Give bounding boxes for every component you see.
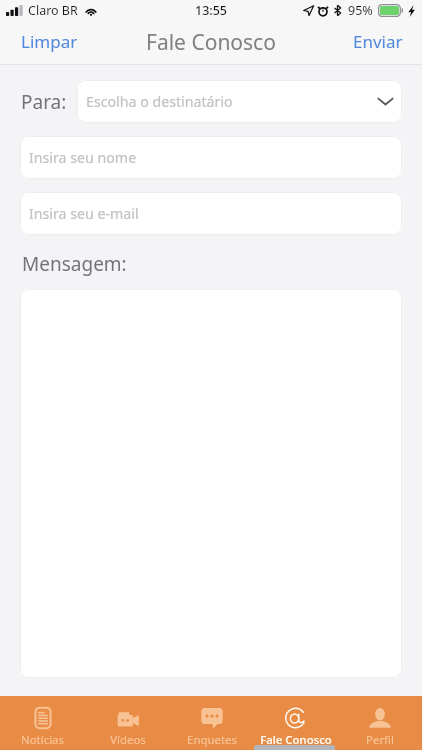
staticText: Enquetes xyxy=(187,732,237,748)
button[interactable]: Insira seu e-mail xyxy=(20,192,402,235)
button[interactable]: Fale Conosco xyxy=(254,696,338,750)
staticText: Fale Conosco xyxy=(260,732,332,748)
staticText: Insira seu nome xyxy=(29,148,137,167)
staticText: Perfil xyxy=(366,732,394,748)
button[interactable]: Enviar xyxy=(332,21,422,62)
staticText: Mensagem: xyxy=(22,251,127,277)
staticText: Vídeos xyxy=(110,732,146,748)
other: Expandir xyxy=(377,93,394,110)
staticText: Notícias xyxy=(21,732,64,748)
staticText: Limpar xyxy=(21,30,78,53)
other: Fale Conosco xyxy=(284,706,308,730)
staticText: Claro BR xyxy=(28,2,78,19)
button[interactable]: Perfil xyxy=(338,696,422,750)
button[interactable]: Escolha o destinatário xyxy=(77,80,402,123)
button[interactable]: Enquetes xyxy=(170,696,254,750)
staticText: Insira seu e-mail xyxy=(29,204,139,223)
staticText: 95% xyxy=(348,2,373,19)
staticText: Para: xyxy=(21,89,67,115)
button[interactable]: Notícias xyxy=(0,696,85,750)
button[interactable]: Vídeos xyxy=(85,696,170,750)
staticText: 13:55 xyxy=(195,2,228,19)
staticText: Escolha o destinatário xyxy=(86,92,233,111)
staticText: Fale Conosco xyxy=(146,28,276,57)
staticText: Enviar xyxy=(353,30,403,53)
button[interactable]: Insira seu nome xyxy=(20,136,402,179)
button[interactable]: Limpar xyxy=(0,21,99,62)
